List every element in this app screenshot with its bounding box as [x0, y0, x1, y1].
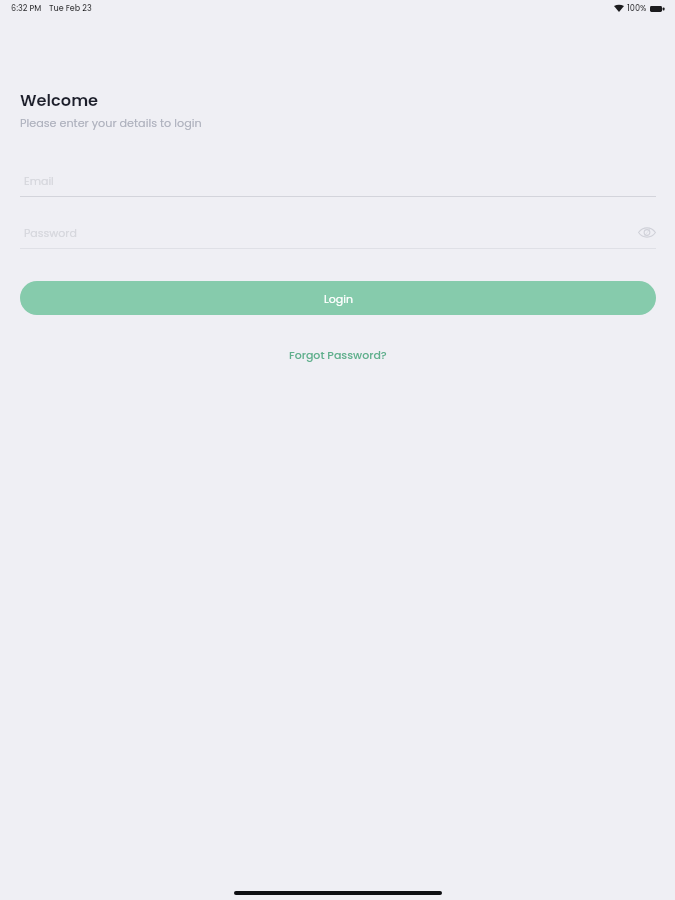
staticText: Forgot Password?	[289, 347, 387, 362]
button[interactable]: Email	[20, 170, 656, 197]
button[interactable]: Forgot Password?	[283, 344, 393, 365]
staticText: 6:32 PM	[11, 3, 42, 14]
staticText: Email	[24, 173, 54, 188]
button[interactable]: Show password	[634, 219, 660, 245]
staticText: Password	[24, 225, 77, 240]
button[interactable]: Password	[20, 222, 656, 249]
staticText: Tue Feb 23	[49, 3, 92, 14]
staticText: Login	[324, 291, 353, 306]
button[interactable]: Login	[20, 281, 656, 315]
staticText: Welcome	[20, 89, 99, 112]
staticText: Please enter your details to login	[20, 115, 202, 131]
staticText: 100%	[627, 3, 647, 14]
